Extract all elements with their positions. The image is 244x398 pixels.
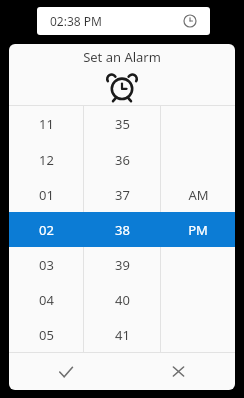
button[interactable]: Confirm (9, 353, 122, 390)
staticText: 35 (115, 115, 130, 133)
button[interactable]: 01 (9, 177, 235, 212)
button[interactable]: 04 (9, 282, 235, 317)
button[interactable]: 03 (9, 247, 235, 282)
button[interactable]: 02:38 PM (37, 7, 210, 35)
staticText: 36 (115, 151, 130, 169)
staticText: 38 (115, 221, 130, 239)
staticText: 12 (39, 151, 54, 169)
staticText: 04 (39, 291, 54, 309)
staticText: 01 (39, 186, 54, 204)
staticText: 41 (115, 326, 130, 344)
staticText: 40 (115, 291, 130, 309)
staticText: 02:38 PM (50, 13, 102, 29)
staticText: 39 (115, 256, 130, 274)
button[interactable]: 11 (9, 106, 235, 142)
staticText: 37 (115, 186, 130, 204)
button[interactable]: 02 (9, 212, 235, 247)
button[interactable]: Pick time (183, 14, 197, 28)
staticText: 11 (39, 115, 54, 133)
staticText: 03 (39, 256, 54, 274)
staticText: PM (188, 221, 208, 239)
staticText: Set an Alarm (83, 48, 161, 66)
staticText: 05 (39, 326, 54, 344)
button[interactable]: 12 (9, 142, 235, 177)
button[interactable]: 05 (9, 317, 235, 352)
button[interactable]: Cancel (122, 353, 235, 390)
staticText: AM (188, 186, 209, 204)
staticText: 02 (39, 221, 54, 239)
